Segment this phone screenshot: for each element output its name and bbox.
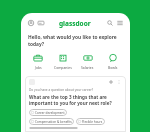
staticText: Salaries bbox=[81, 65, 94, 70]
button[interactable]: Search bbox=[106, 19, 114, 27]
button[interactable]: Bowls bbox=[100, 53, 125, 70]
button[interactable]: Companies bbox=[50, 53, 75, 70]
button[interactable]: Messages bbox=[37, 19, 45, 27]
staticText: Hello, what would you like to explore to… bbox=[28, 34, 123, 48]
button[interactable]: Compensation & benefits bbox=[29, 118, 74, 125]
button[interactable]: Strong company leadership bbox=[29, 127, 78, 129]
staticText: Do you have a question about your career… bbox=[29, 88, 94, 92]
button[interactable]: Flexible hours bbox=[76, 118, 105, 125]
button[interactable]: Profile bbox=[27, 19, 35, 27]
staticText: Bowls bbox=[108, 65, 118, 70]
staticText: Companies bbox=[54, 65, 72, 70]
button[interactable]: More bbox=[116, 79, 122, 85]
button[interactable]: Follow bbox=[108, 79, 114, 85]
staticText: What are the top 3 things that are impor… bbox=[29, 94, 122, 106]
staticText: glassdoor bbox=[59, 19, 91, 28]
button[interactable]: Salaries bbox=[75, 53, 100, 70]
staticText: Compensation & benefits bbox=[35, 120, 72, 124]
staticText: Career development bbox=[35, 111, 65, 115]
staticText: Flexible hours bbox=[82, 120, 103, 124]
button[interactable]: Menu bbox=[116, 19, 124, 27]
button[interactable]: Career development bbox=[29, 109, 67, 116]
staticText: Jobs bbox=[35, 65, 42, 70]
button[interactable]: Jobs bbox=[26, 53, 50, 70]
